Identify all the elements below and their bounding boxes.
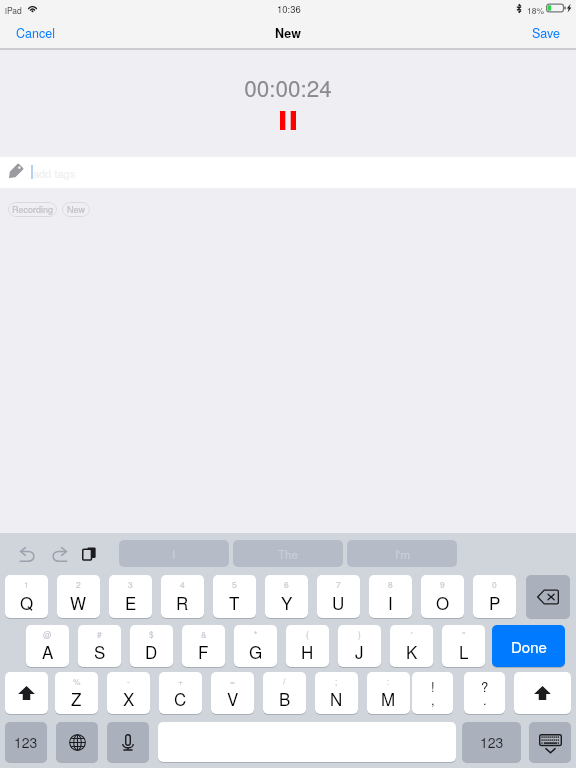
staticText: L — [459, 639, 469, 663]
staticText: X — [123, 686, 135, 710]
button[interactable]: 3 — [109, 575, 152, 618]
button[interactable]: 7 — [317, 575, 360, 618]
staticText: Save — [532, 24, 560, 41]
staticText: 4 — [180, 578, 185, 590]
button[interactable]: : — [367, 672, 410, 714]
staticText: Y — [281, 590, 293, 614]
staticText: R — [176, 590, 189, 614]
button[interactable]: = — [211, 672, 254, 714]
staticText: D — [145, 639, 158, 663]
staticText: : — [387, 675, 390, 687]
staticText: I'm — [395, 546, 410, 562]
button[interactable]: 8 — [369, 575, 412, 618]
button[interactable]: 1 — [5, 575, 48, 618]
button[interactable]: Cancel — [6, 20, 65, 45]
staticText: New — [275, 24, 301, 42]
staticText: ' — [411, 628, 413, 640]
staticText: Done — [511, 636, 547, 657]
staticText: F — [198, 639, 209, 663]
button[interactable]: Recording — [8, 202, 57, 217]
staticText: ) — [358, 628, 361, 640]
button[interactable]: Shift — [5, 672, 48, 714]
staticText: M — [381, 686, 396, 710]
staticText: + — [178, 675, 183, 687]
staticText: 18% — [527, 4, 545, 16]
button[interactable]: New — [62, 202, 90, 217]
button[interactable]: - — [107, 672, 150, 714]
staticText: 8 — [388, 578, 393, 590]
button[interactable]: ( — [286, 625, 329, 667]
staticText: 5 — [232, 578, 237, 590]
staticText: 123 — [480, 732, 504, 752]
staticText: A — [42, 639, 54, 663]
staticText: add tags — [33, 165, 76, 181]
button[interactable]: ) — [338, 625, 381, 667]
staticText: Z — [71, 686, 82, 710]
staticText: C — [174, 686, 187, 710]
button[interactable]: Done — [492, 625, 565, 667]
button[interactable]: 6 — [265, 575, 308, 618]
button[interactable]: Paste — [82, 546, 97, 561]
button[interactable]: Switch keyboard — [56, 722, 98, 762]
staticText: 10:36 — [277, 2, 301, 16]
button[interactable]: 123 — [5, 722, 47, 762]
button[interactable]: 2 — [57, 575, 100, 618]
button[interactable]: The — [233, 540, 343, 567]
staticText: % — [73, 675, 81, 687]
staticText: I — [388, 590, 393, 614]
staticText: 0 — [492, 578, 497, 590]
staticText: iPad — [5, 4, 22, 16]
staticText: 00:00:24 — [0, 71, 576, 103]
staticText: 6 — [284, 578, 289, 590]
staticText: W — [70, 590, 87, 614]
staticText: 123 — [14, 732, 38, 752]
staticText: ? — [481, 677, 489, 696]
staticText: New — [67, 203, 85, 216]
staticText: - — [127, 675, 130, 687]
button[interactable]: ' — [390, 625, 433, 667]
button[interactable]: 9 — [421, 575, 464, 618]
button[interactable]: Redo — [52, 547, 68, 562]
button[interactable]: 123 — [462, 722, 521, 762]
button[interactable]: Hide keyboard — [529, 722, 571, 762]
staticText: N — [330, 686, 343, 710]
staticText: 9 — [440, 578, 445, 590]
staticText: T — [229, 590, 240, 614]
button[interactable]: 4 — [161, 575, 204, 618]
button[interactable]: " — [442, 625, 485, 667]
staticText: V — [227, 686, 239, 710]
button[interactable]: & — [182, 625, 225, 667]
staticText: O — [436, 590, 450, 614]
button[interactable]: 0 — [473, 575, 516, 618]
staticText: 1 — [24, 578, 29, 590]
button[interactable]: $ — [130, 625, 173, 667]
button[interactable]: ! — [412, 672, 453, 714]
button[interactable]: Backspace — [526, 575, 570, 618]
button[interactable]: % — [55, 672, 98, 714]
staticText: G — [249, 639, 263, 663]
staticText: @ — [43, 628, 52, 640]
button[interactable]: ? — [464, 672, 505, 714]
button[interactable]: ; — [315, 672, 358, 714]
staticText: , — [431, 690, 435, 709]
staticText: ; — [335, 675, 338, 687]
button[interactable]: @ — [26, 625, 69, 667]
button[interactable]: Shift — [514, 672, 571, 714]
staticText: $ — [149, 628, 154, 640]
button[interactable]: Pause recording — [280, 111, 296, 130]
button[interactable]: * — [234, 625, 277, 667]
button[interactable]: / — [263, 672, 306, 714]
button[interactable]: Undo — [19, 547, 35, 562]
staticText: 7 — [336, 578, 341, 590]
button[interactable]: Save — [522, 20, 570, 45]
button[interactable]: + — [159, 672, 202, 714]
button[interactable]: # — [78, 625, 121, 667]
staticText: = — [230, 675, 235, 687]
staticText: Q — [20, 590, 34, 614]
button[interactable]: 5 — [213, 575, 256, 618]
staticText: ( — [306, 628, 309, 640]
button[interactable]: Dictation — [107, 722, 149, 762]
